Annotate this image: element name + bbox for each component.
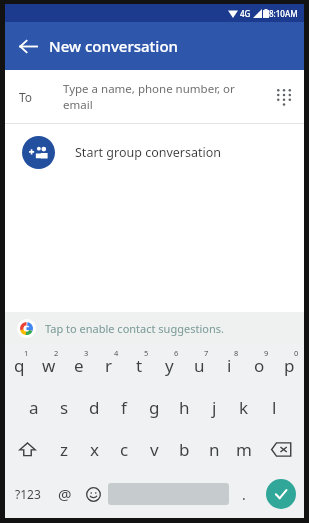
- staticText: .: [242, 485, 246, 504]
- button[interactable]: t: [124, 344, 154, 386]
- staticText: c: [120, 438, 129, 461]
- button[interactable]: f: [109, 386, 139, 428]
- button[interactable]: i: [214, 344, 244, 386]
- button[interactable]: Dialpad: [264, 77, 304, 117]
- staticText: k: [239, 396, 249, 419]
- staticText: 8: [234, 348, 239, 358]
- button[interactable]: u: [184, 344, 214, 386]
- staticText: s: [60, 396, 69, 419]
- staticText: m: [236, 438, 252, 461]
- button[interactable]: Start group conversation: [5, 124, 304, 180]
- staticText: d: [89, 396, 100, 419]
- button[interactable]: Done: [266, 479, 296, 509]
- button[interactable]: v: [139, 428, 169, 470]
- button[interactable]: a: [19, 386, 49, 428]
- staticText: h: [179, 396, 190, 419]
- button[interactable]: Back: [5, 24, 49, 68]
- button[interactable]: Emoji: [79, 470, 108, 518]
- button[interactable]: .: [229, 470, 258, 518]
- staticText: f: [121, 396, 127, 419]
- staticText: 4G: [240, 8, 251, 19]
- staticText: 8:10AM: [269, 8, 298, 19]
- staticText: a: [29, 396, 39, 419]
- button[interactable]: b: [169, 428, 199, 470]
- staticText: 4: [114, 348, 119, 358]
- staticText: j: [212, 396, 217, 419]
- button[interactable]: j: [199, 386, 229, 428]
- staticText: t: [136, 354, 143, 377]
- staticText: Start group conversation: [75, 144, 222, 161]
- staticText: u: [194, 354, 205, 377]
- staticText: 0: [294, 348, 299, 358]
- button[interactable]: @: [50, 470, 79, 518]
- button[interactable]: Tap to enable contact suggestions.: [5, 312, 304, 344]
- staticText: 7: [204, 348, 209, 358]
- button[interactable]: h: [169, 386, 199, 428]
- button[interactable]: r: [94, 344, 124, 386]
- staticText: i: [227, 354, 232, 377]
- button[interactable]: c: [109, 428, 139, 470]
- button[interactable]: y: [154, 344, 184, 386]
- staticText: 9: [264, 348, 269, 358]
- staticText: 6: [174, 348, 179, 358]
- button[interactable]: d: [79, 386, 109, 428]
- staticText: w: [42, 354, 56, 377]
- button[interactable]: n: [199, 428, 229, 470]
- button[interactable]: o: [244, 344, 274, 386]
- staticText: e: [74, 354, 84, 377]
- button[interactable]: ?123: [5, 470, 50, 518]
- button[interactable]: w: [34, 344, 64, 386]
- staticText: 3: [84, 348, 89, 358]
- button[interactable]: q: [5, 344, 34, 386]
- staticText: To: [19, 89, 33, 105]
- button[interactable]: z: [49, 428, 79, 470]
- staticText: 5: [144, 348, 149, 358]
- button[interactable]: e: [64, 344, 94, 386]
- staticText: 2: [54, 348, 59, 358]
- staticText: 1: [24, 348, 29, 358]
- button[interactable]: l: [259, 386, 289, 428]
- staticText: Type a name, phone number, or email: [63, 81, 264, 112]
- staticText: g: [149, 396, 160, 419]
- button[interactable]: s: [49, 386, 79, 428]
- staticText: l: [272, 396, 277, 419]
- button[interactable]: k: [229, 386, 259, 428]
- staticText: x: [90, 438, 99, 461]
- staticText: o: [254, 354, 265, 377]
- button[interactable]: Shift: [5, 428, 49, 470]
- staticText: q: [14, 354, 25, 377]
- staticText: New conversation: [49, 36, 178, 56]
- button[interactable]: p: [274, 344, 304, 386]
- button[interactable]: x: [79, 428, 109, 470]
- staticText: b: [179, 438, 190, 461]
- staticText: Tap to enable contact suggestions.: [45, 321, 224, 336]
- button[interactable]: Backspace: [259, 428, 304, 470]
- staticText: v: [150, 438, 159, 461]
- staticText: ?123: [15, 486, 41, 502]
- staticText: @: [58, 484, 72, 504]
- staticText: p: [284, 354, 295, 377]
- staticText: r: [105, 354, 113, 377]
- button[interactable]: m: [229, 428, 259, 470]
- staticText: y: [165, 354, 174, 377]
- staticText: n: [209, 438, 220, 461]
- button[interactable]: g: [139, 386, 169, 428]
- staticText: z: [60, 438, 68, 461]
